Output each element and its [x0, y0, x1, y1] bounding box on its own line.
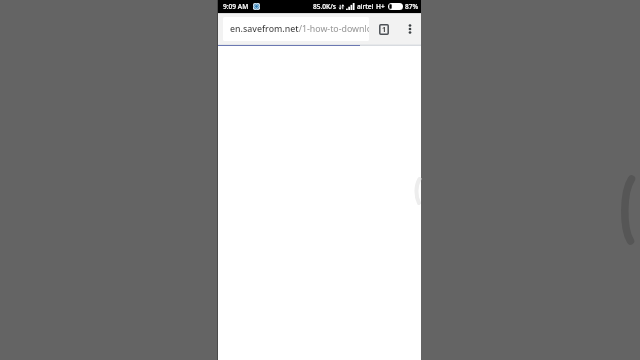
button[interactable]: More options: [398, 17, 422, 41]
staticText: 1: [382, 25, 387, 35]
staticText: airtel: [357, 2, 374, 11]
button[interactable]: Tabs, 1 open: [372, 17, 396, 41]
button[interactable]: en.savefrom.net/1-how-to-download: [223, 17, 369, 41]
staticText: H+: [376, 2, 385, 11]
staticText: 9:09 AM: [223, 2, 249, 11]
staticText: 87%: [405, 2, 419, 11]
staticText: 85.0K/s: [313, 2, 337, 11]
staticText: en.savefrom.net/1-how-to-download: [230, 23, 369, 35]
